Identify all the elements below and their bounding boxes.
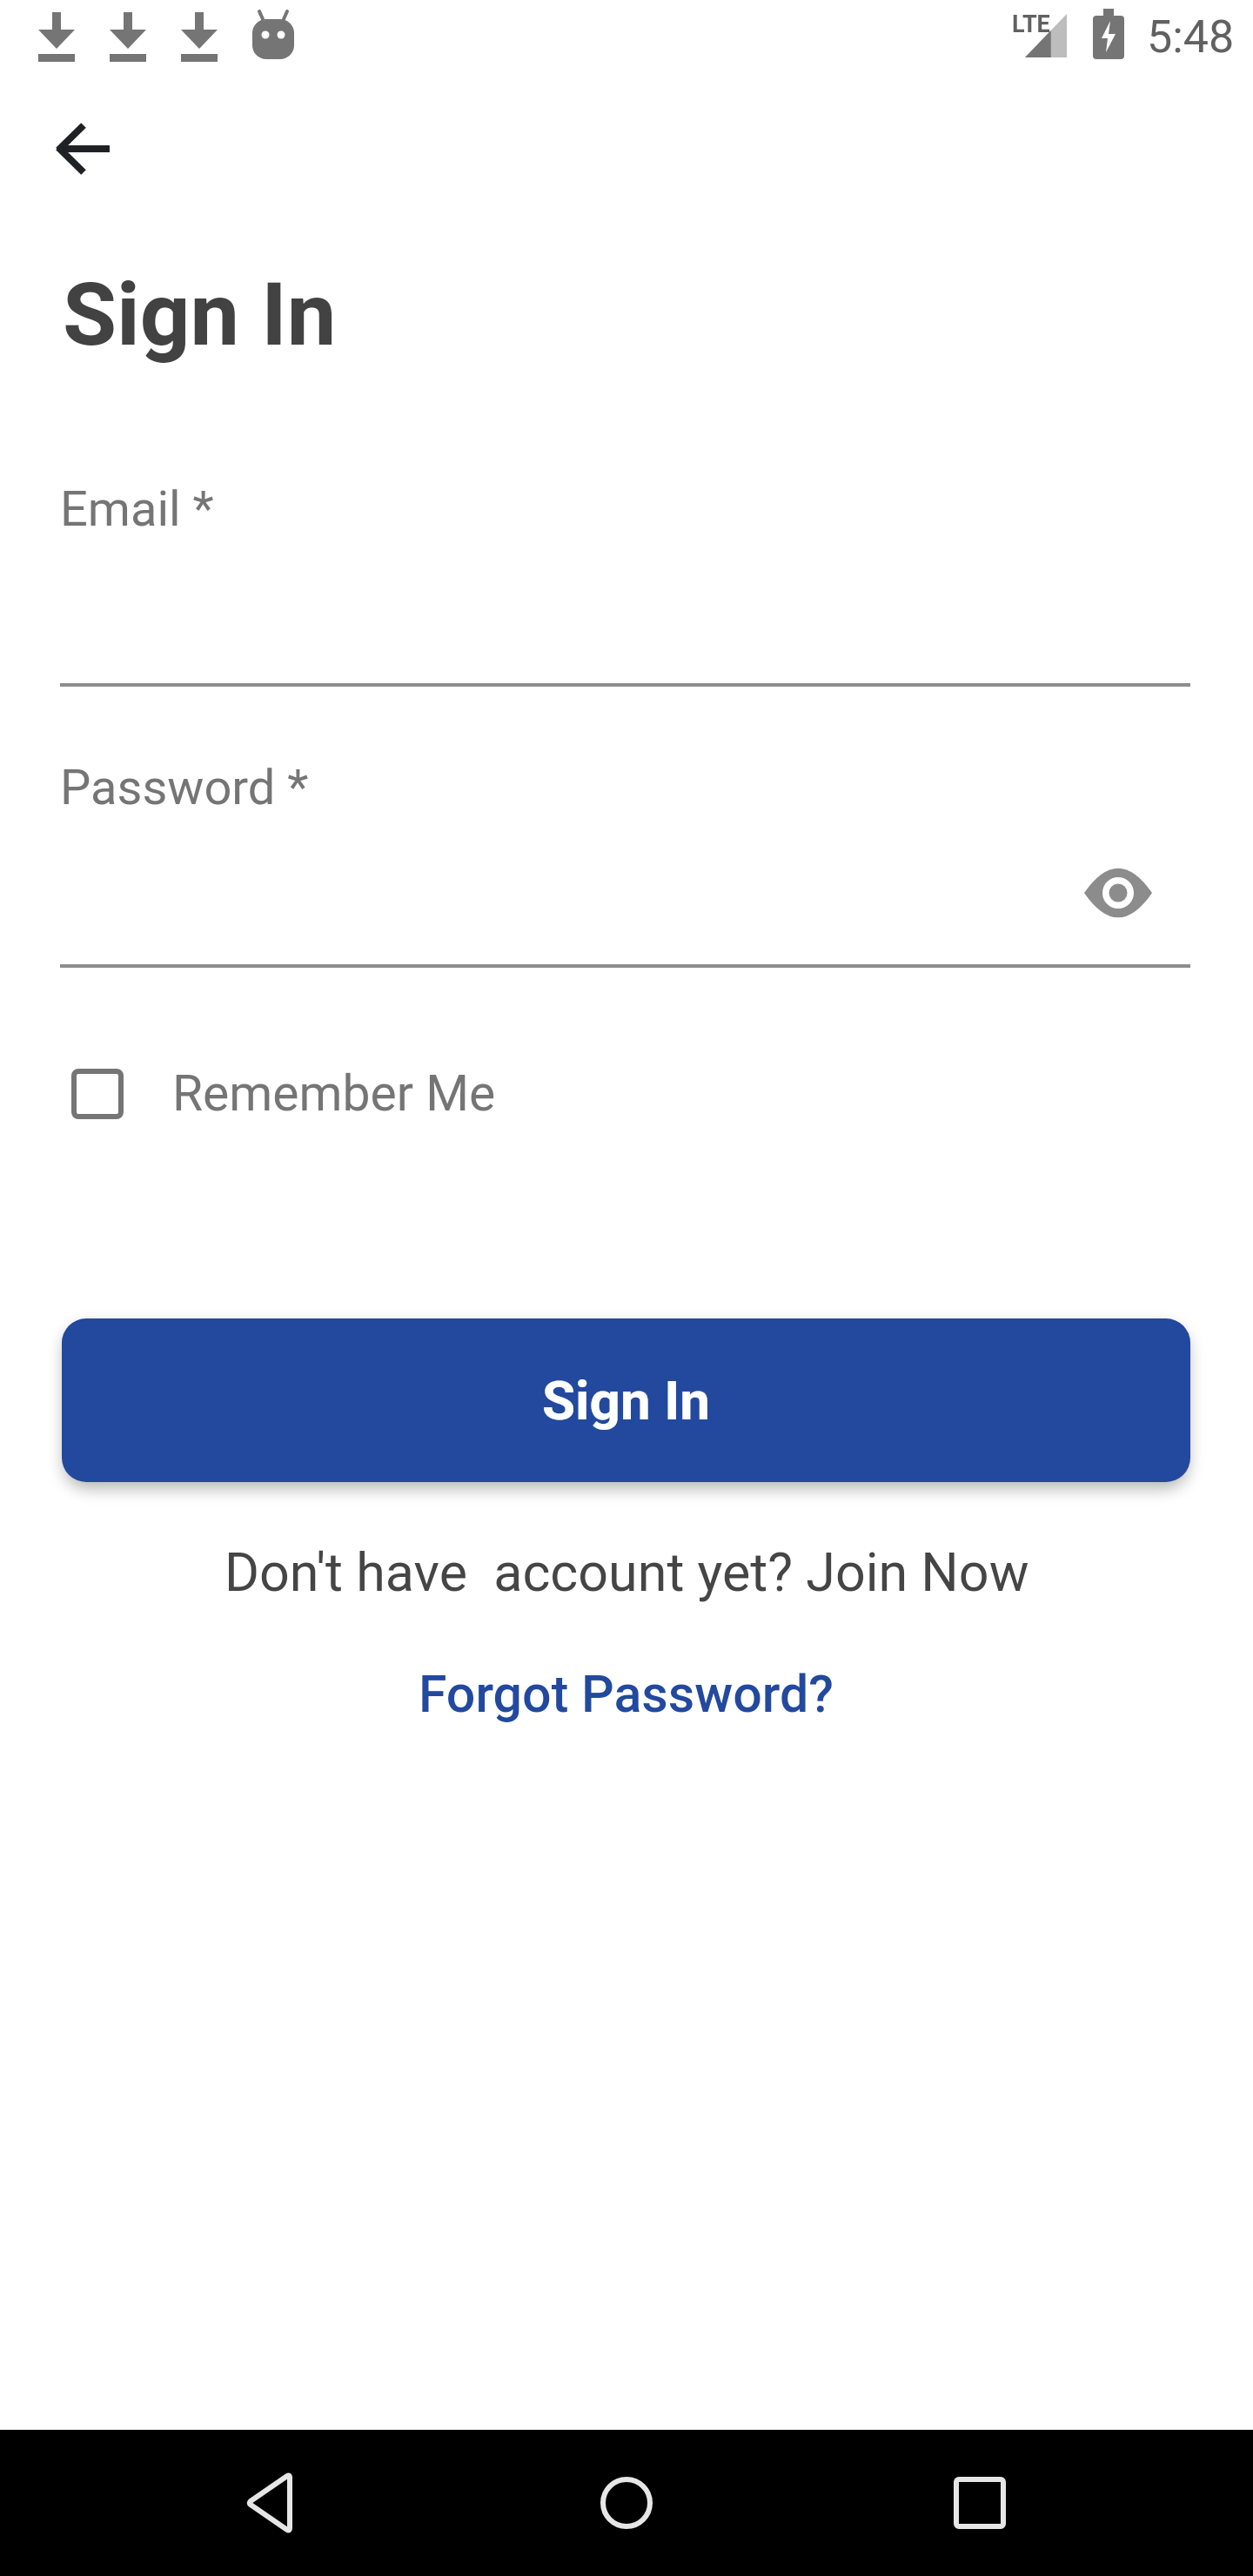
button[interactable]	[49, 112, 122, 185]
button[interactable]: Don't have account yet? Join Now	[224, 1541, 1029, 1603]
staticText: Password *	[60, 759, 309, 816]
button[interactable]: Sign In	[62, 1318, 1190, 1482]
button[interactable]: Forgot Password?	[419, 1664, 834, 1724]
button[interactable]: Remember Me	[52, 1050, 470, 1137]
button[interactable]	[592, 2468, 661, 2538]
staticText: Sign In	[542, 1369, 710, 1432]
staticText: LTE	[1012, 10, 1050, 38]
button[interactable]	[945, 2468, 1015, 2538]
staticText: Remember Me	[172, 1064, 496, 1123]
staticText: Sign In	[63, 263, 337, 366]
staticText: Email *	[60, 480, 214, 538]
button[interactable]	[1076, 862, 1160, 924]
button[interactable]	[240, 2468, 310, 2538]
staticText: 5:48	[1147, 10, 1235, 64]
